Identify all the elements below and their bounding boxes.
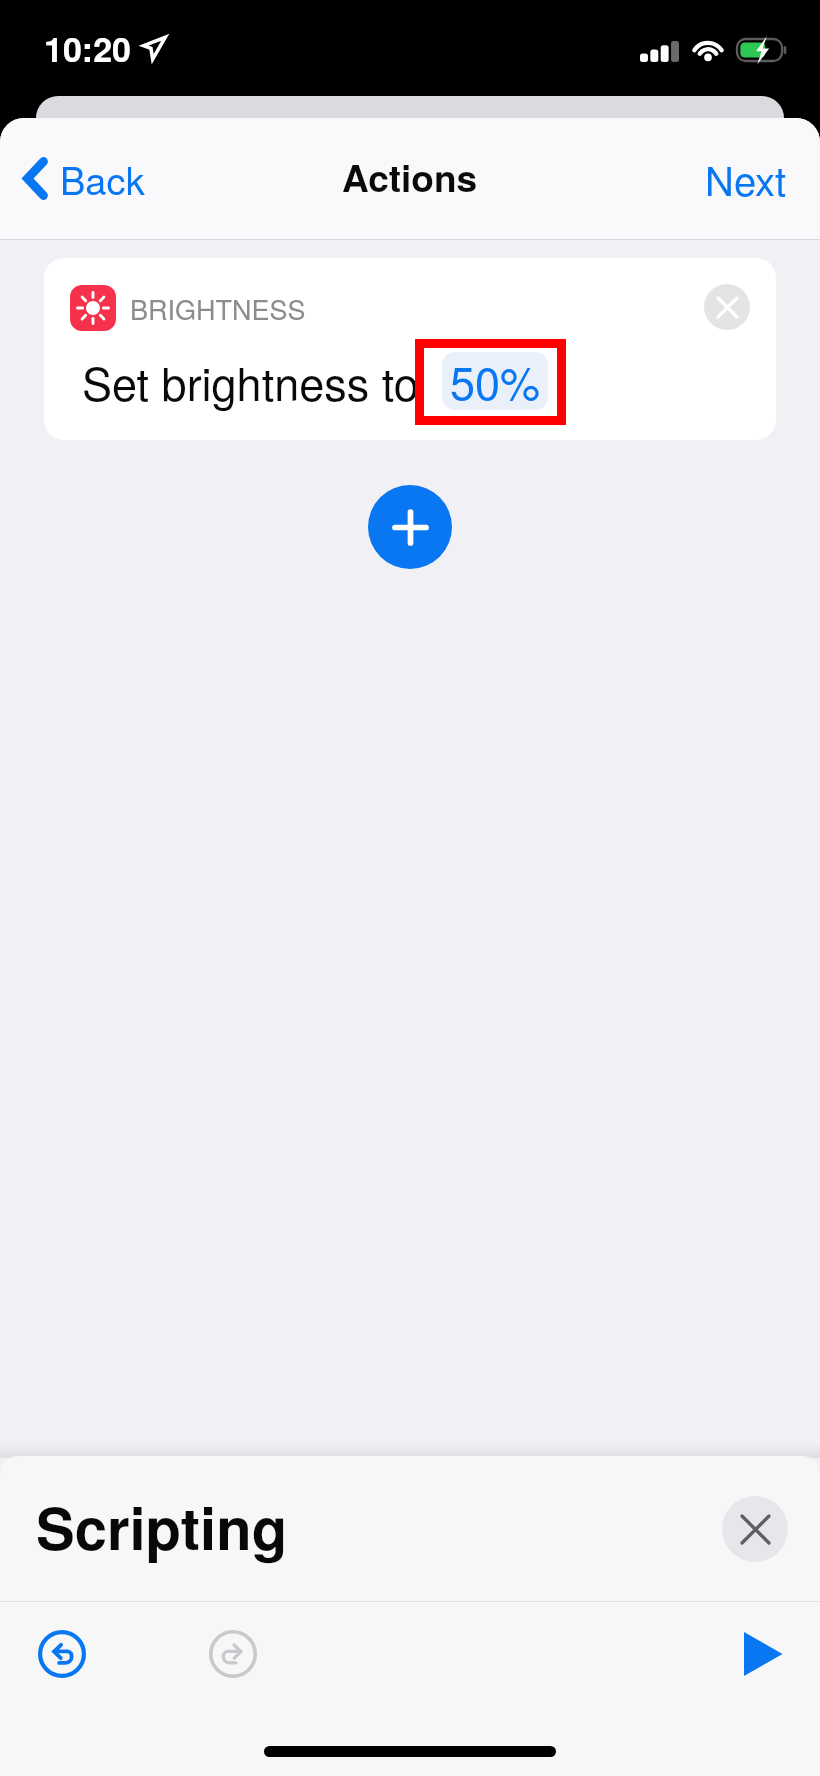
staticText: Next — [705, 150, 787, 207]
staticText: 10:20 — [44, 24, 131, 73]
button[interactable]: Remove action — [704, 284, 750, 330]
staticText: Scripting — [36, 1485, 288, 1568]
button[interactable]: Undo — [30, 1622, 94, 1686]
button[interactable]: BRIGHTNESS — [44, 258, 776, 440]
button[interactable]: Add action — [368, 485, 452, 569]
button[interactable]: Back — [17, 141, 153, 215]
button[interactable]: Run — [730, 1622, 794, 1686]
staticText: Actions — [342, 150, 478, 203]
staticText: 50% — [450, 352, 541, 406]
staticText: BRIGHTNESS — [130, 289, 306, 328]
staticText: Set brightness to — [82, 349, 419, 413]
staticText: Back — [60, 151, 145, 205]
button[interactable]: Redo — [201, 1622, 265, 1686]
button[interactable]: Next — [697, 140, 795, 217]
button[interactable]: Close — [722, 1496, 788, 1562]
button[interactable]: 50% — [442, 352, 548, 410]
